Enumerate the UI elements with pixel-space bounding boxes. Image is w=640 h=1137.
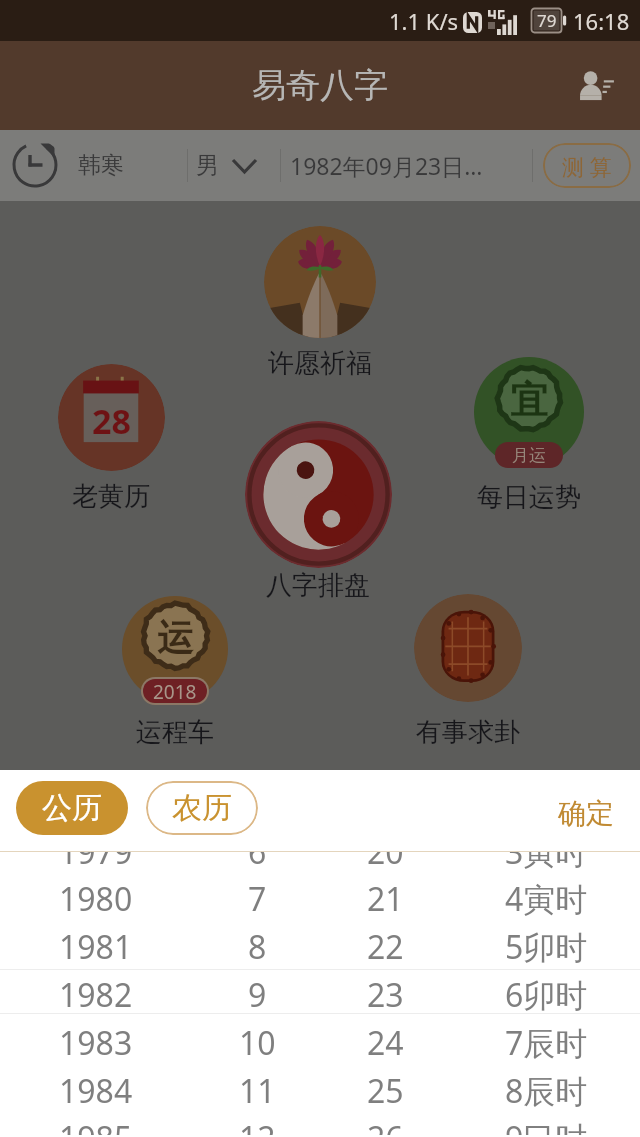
staticText: 28 bbox=[92, 398, 131, 444]
staticText: 10 bbox=[239, 1021, 276, 1065]
staticText: 运程车 bbox=[136, 716, 214, 749]
staticText: 运 bbox=[157, 615, 193, 660]
staticText: 1980 bbox=[59, 877, 133, 921]
button[interactable]: 运程车 bbox=[122, 596, 228, 702]
button[interactable]: Profile bbox=[564, 55, 626, 117]
button[interactable]: 每日运势 bbox=[474, 357, 584, 467]
staticText: 易奇八字 bbox=[252, 64, 388, 107]
staticText: 农历 bbox=[172, 789, 232, 827]
staticText: 16:18 bbox=[573, 6, 630, 36]
staticText: 8辰时 bbox=[505, 1069, 588, 1113]
button[interactable]: 农历 bbox=[146, 781, 258, 835]
staticText: 6 bbox=[248, 851, 267, 874]
button[interactable]: 1982年09月23日… bbox=[290, 143, 525, 188]
button[interactable]: 老黄历 bbox=[58, 364, 165, 471]
staticText: 月运 bbox=[512, 445, 546, 466]
button[interactable]: 有事求卦 bbox=[414, 594, 522, 702]
staticText: 确定 bbox=[558, 796, 614, 831]
staticText: 1982 bbox=[59, 973, 133, 1017]
staticText: 12 bbox=[239, 1116, 276, 1135]
staticText: 26 bbox=[367, 1116, 404, 1135]
staticText: 1.1 K/s bbox=[389, 6, 459, 36]
staticText: 老黄历 bbox=[72, 480, 150, 513]
staticText: 6卯时 bbox=[505, 973, 588, 1017]
staticText: 5卯时 bbox=[505, 925, 588, 969]
staticText: 7 bbox=[248, 877, 267, 921]
staticText: 24 bbox=[367, 1021, 404, 1065]
staticText: 1985 bbox=[59, 1116, 133, 1135]
button[interactable]: 公历 bbox=[16, 781, 128, 835]
staticText: 4寅时 bbox=[505, 877, 588, 921]
staticText: 许愿祈福 bbox=[268, 347, 372, 380]
staticText: 11 bbox=[239, 1069, 276, 1113]
staticText: 每日运势 bbox=[477, 481, 581, 514]
staticText: 23 bbox=[367, 973, 404, 1017]
button[interactable]: 男 bbox=[191, 143, 271, 188]
button[interactable]: 八字排盘 bbox=[245, 421, 392, 568]
button[interactable]: 韩寒 bbox=[78, 143, 178, 188]
staticText: 22 bbox=[367, 925, 404, 969]
button[interactable]: 测 算 bbox=[543, 143, 631, 188]
staticText: 公历 bbox=[42, 789, 102, 827]
staticText: 20 bbox=[367, 851, 404, 874]
staticText: 9 bbox=[248, 973, 267, 1017]
staticText: 21 bbox=[367, 877, 404, 921]
staticText: 9巳时 bbox=[505, 1116, 588, 1135]
staticText: 1981 bbox=[59, 925, 133, 969]
staticText: 79 bbox=[537, 9, 557, 32]
staticText: 25 bbox=[367, 1069, 404, 1113]
staticText: 1984 bbox=[59, 1069, 133, 1113]
staticText: 有事求卦 bbox=[416, 716, 520, 749]
button[interactable]: 许愿祈福 bbox=[264, 226, 376, 338]
staticText: 8 bbox=[248, 925, 267, 969]
staticText: 7辰时 bbox=[505, 1021, 588, 1065]
staticText: 八字排盘 bbox=[266, 569, 370, 602]
staticText: 1982年09月23日… bbox=[290, 150, 483, 181]
staticText: 测 算 bbox=[562, 151, 612, 181]
staticText: 男 bbox=[196, 151, 219, 180]
staticText: 宜 bbox=[510, 376, 548, 424]
staticText: 1983 bbox=[59, 1021, 133, 1065]
button[interactable]: 确定 bbox=[538, 784, 634, 842]
staticText: 2018 bbox=[153, 679, 197, 703]
button[interactable]: History bbox=[9, 139, 61, 191]
staticText: 3寅时 bbox=[505, 851, 588, 874]
staticText: 1979 bbox=[59, 851, 133, 874]
staticText: 韩寒 bbox=[78, 151, 124, 180]
